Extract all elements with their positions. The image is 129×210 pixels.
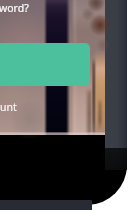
staticText: word? — [0, 1, 29, 15]
staticText: unt — [0, 100, 17, 114]
button[interactable]: Sign in — [0, 43, 90, 86]
